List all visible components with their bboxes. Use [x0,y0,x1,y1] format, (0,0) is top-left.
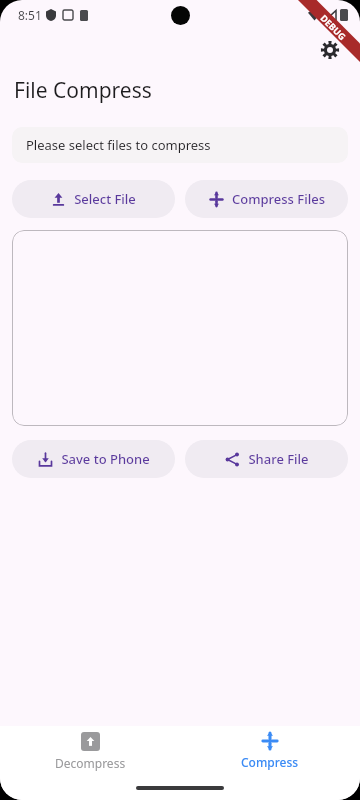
button[interactable]: Share File [185,440,348,478]
button[interactable]: Save to Phone [12,440,175,478]
staticText: DEBUG [318,12,349,42]
staticText: Select File [74,190,136,208]
button[interactable]: Select File [12,180,175,218]
button[interactable]: Compress [180,726,360,776]
staticText: Please select files to compress [26,136,211,154]
staticText: Decompress [55,755,126,771]
button[interactable]: Compress Files [185,180,348,218]
staticText: Compress [241,754,299,770]
staticText: 8:51 [18,7,42,23]
staticText: Save to Phone [61,450,150,468]
staticText: File Compress [14,76,152,105]
staticText: Compress Files [232,190,325,208]
button[interactable]: Settings [312,32,348,68]
button[interactable]: Decompress [0,726,180,776]
staticText: Share File [248,450,309,468]
